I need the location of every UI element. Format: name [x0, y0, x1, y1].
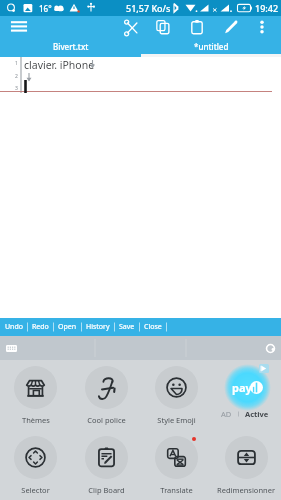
button[interactable]: Cool police	[71, 360, 141, 430]
staticText: Save	[119, 322, 135, 332]
button[interactable]: History	[84, 318, 112, 336]
staticText: Translate	[160, 485, 193, 495]
button[interactable]: Advertisement paylib	[211, 360, 281, 430]
staticText: Close	[144, 322, 162, 332]
staticText: 1	[15, 60, 18, 67]
staticText: 2	[15, 73, 18, 80]
staticText: 16°	[39, 3, 52, 14]
button[interactable]: More options	[250, 16, 274, 37]
button[interactable]: Save	[117, 318, 137, 336]
staticText: Open	[58, 322, 77, 332]
button[interactable]: Redo	[30, 318, 51, 336]
button[interactable]: Clip Board	[71, 430, 141, 500]
staticText: Bivert.txt	[53, 41, 89, 52]
staticText: Redimensionner	[217, 485, 275, 495]
button[interactable]: Redimensionner	[211, 430, 281, 500]
button[interactable]: Bivert.txt	[0, 37, 141, 57]
staticText: Cool police	[87, 415, 126, 425]
button[interactable]: Thèmes	[0, 360, 71, 430]
button[interactable]: *untitled	[141, 37, 281, 57]
staticText: 51,57 Ko/s	[126, 2, 171, 14]
staticText: Style Emoji	[157, 415, 196, 425]
staticText: Thèmes	[22, 415, 50, 425]
button[interactable]: Undo	[3, 318, 25, 336]
button[interactable]: Close	[142, 318, 164, 336]
staticText: *untitled	[194, 41, 229, 52]
button[interactable]: Edit	[219, 16, 243, 37]
button[interactable]: Cut	[119, 16, 143, 37]
staticText: 19:42	[255, 2, 279, 14]
staticText: Active	[245, 409, 269, 419]
button[interactable]: Switch keyboard	[6, 345, 17, 352]
staticText: Undo	[5, 322, 23, 332]
staticText: AD	[221, 409, 232, 419]
staticText: pay	[232, 380, 252, 395]
staticText: Selector	[21, 485, 50, 495]
button[interactable]: Settings	[265, 343, 276, 354]
button[interactable]: Menu	[6, 16, 32, 37]
staticText: clavier. iPhone	[24, 58, 95, 72]
button[interactable]: Selector	[0, 430, 71, 500]
staticText: 3	[15, 85, 18, 92]
button[interactable]: Style Emoji	[141, 360, 211, 430]
button[interactable]: Copy	[151, 16, 175, 37]
staticText: History	[86, 322, 110, 332]
button[interactable]: Open	[56, 318, 79, 336]
button[interactable]: Paste	[185, 16, 209, 37]
button[interactable]: Translate	[141, 430, 211, 500]
staticText: Clip Board	[88, 485, 125, 495]
staticText: Redo	[32, 322, 49, 332]
